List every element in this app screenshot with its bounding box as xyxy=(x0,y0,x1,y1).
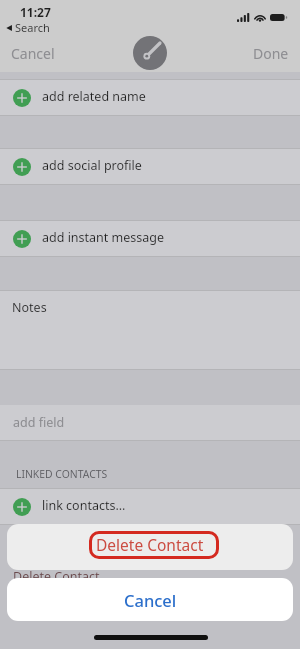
button[interactable]: Delete Contact xyxy=(7,524,293,570)
button[interactable]: add instant message xyxy=(0,221,300,256)
staticText: Delete Contact xyxy=(96,534,204,555)
staticText: Cancel xyxy=(124,589,177,611)
button[interactable]: Done xyxy=(245,38,300,69)
staticText: LINKED CONTACTS xyxy=(16,467,108,481)
button[interactable]: add field xyxy=(0,405,300,440)
staticText: add instant message xyxy=(42,229,165,246)
button[interactable]: Cancel xyxy=(7,578,293,621)
button[interactable]: link contacts... xyxy=(0,489,300,524)
staticText: Notes xyxy=(12,299,47,316)
staticText: link contacts... xyxy=(42,497,126,514)
button[interactable]: Cancel xyxy=(0,38,63,69)
staticText: Search xyxy=(15,20,50,35)
button[interactable]: add social profile xyxy=(0,149,300,184)
staticText: add field xyxy=(13,414,65,431)
staticText: add social profile xyxy=(42,157,142,174)
staticText: Delete Contact xyxy=(13,568,100,585)
button[interactable]: Notes xyxy=(0,291,300,369)
staticText: add related name xyxy=(42,88,146,105)
button[interactable]: add related name xyxy=(0,80,300,115)
button[interactable]: Edit contact photo xyxy=(133,36,167,70)
staticText: 11:27 xyxy=(20,4,51,20)
